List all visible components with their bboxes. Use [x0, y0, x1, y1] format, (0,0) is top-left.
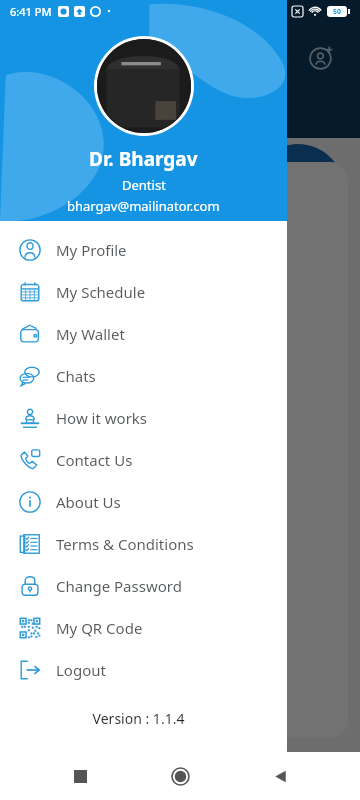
button[interactable]: My Wallet: [0, 313, 287, 355]
staticText: Dr. Bhargav: [89, 146, 198, 172]
button[interactable]: Recents: [60, 756, 100, 796]
staticText: Logout: [56, 660, 106, 680]
staticText: Change Password: [56, 576, 182, 596]
button[interactable]: Home: [160, 756, 200, 796]
staticText: My Profile: [56, 240, 127, 260]
staticText: 6:41 PM: [10, 4, 52, 19]
staticText: bhargav@mailinator.com: [67, 197, 220, 215]
button[interactable]: Terms & Conditions: [0, 523, 287, 565]
button[interactable]: About Us: [0, 481, 287, 523]
staticText: How it works: [56, 408, 148, 428]
staticText: Dentist: [122, 176, 166, 194]
button[interactable]: Add patient: [300, 36, 344, 80]
staticText: My Wallet: [56, 324, 125, 344]
staticText: Chats: [56, 366, 96, 386]
button[interactable]: Contact Us: [0, 439, 287, 481]
staticText: My QR Code: [56, 618, 143, 638]
staticText: Contact Us: [56, 450, 133, 470]
button[interactable]: Back: [260, 756, 300, 796]
staticText: About Us: [56, 492, 121, 512]
button[interactable]: Logout: [0, 649, 287, 691]
button[interactable]: My Profile: [0, 229, 287, 271]
staticText: My Schedule: [56, 282, 146, 302]
button[interactable]: My QR Code: [0, 607, 287, 649]
staticText: Terms & Conditions: [56, 534, 194, 554]
staticText: 50: [333, 7, 342, 17]
staticText: Version : 1.1.4: [0, 709, 277, 728]
button[interactable]: How it works: [0, 397, 287, 439]
button[interactable]: Profile photo: [97, 39, 191, 133]
button[interactable]: Change Password: [0, 565, 287, 607]
button[interactable]: My Schedule: [0, 271, 287, 313]
button[interactable]: Menu: [12, 36, 56, 80]
button[interactable]: Chats: [0, 355, 287, 397]
